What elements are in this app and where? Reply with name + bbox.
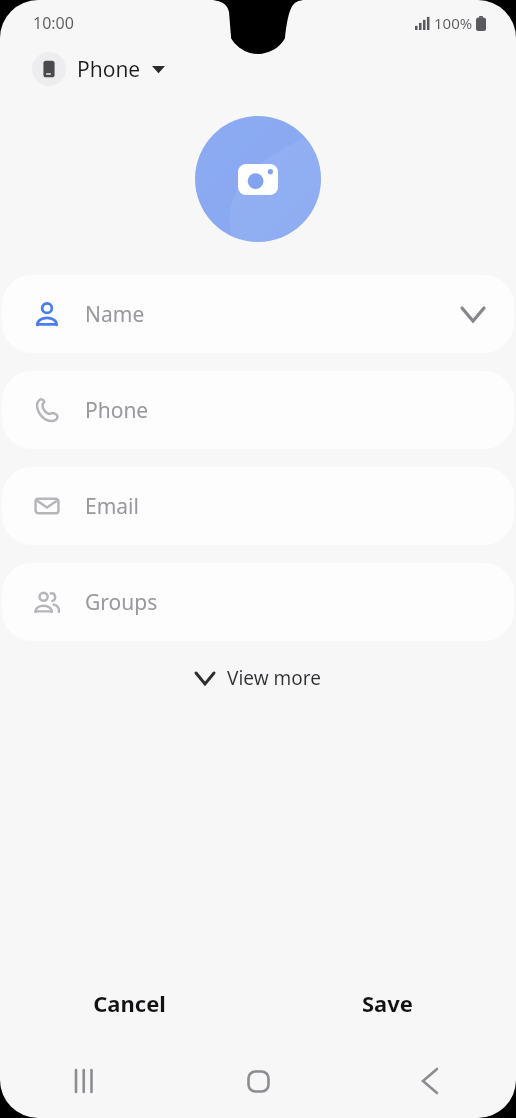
staticText: Cancel [93, 988, 166, 1018]
button[interactable]: Back [344, 1060, 516, 1102]
button[interactable]: Recent apps [0, 1060, 172, 1102]
button[interactable]: Cancel [0, 976, 258, 1030]
button[interactable]: View more [180, 655, 337, 701]
button[interactable]: Email [2, 467, 514, 545]
button[interactable]: Name [2, 275, 514, 353]
staticText: Phone [77, 55, 141, 84]
staticText: Name [85, 300, 462, 329]
button[interactable]: Phone [28, 46, 169, 92]
staticText: Phone [85, 396, 514, 425]
staticText: View more [227, 665, 321, 691]
staticText: Email [85, 492, 514, 521]
button[interactable]: Save [258, 976, 516, 1030]
button[interactable]: Add photo [195, 116, 321, 242]
staticText: Save [362, 988, 413, 1018]
button[interactable]: Home [172, 1060, 344, 1102]
staticText: 100% [434, 13, 473, 33]
button[interactable]: Groups [2, 563, 514, 641]
staticText: 10:00 [33, 12, 74, 34]
staticText: Groups [85, 588, 514, 617]
button[interactable]: Phone [2, 371, 514, 449]
